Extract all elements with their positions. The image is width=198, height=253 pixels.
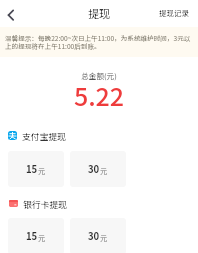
staticText: 元 <box>100 233 108 243</box>
staticText: 提现记录 <box>159 7 189 18</box>
staticText: 银行卡提现 <box>23 198 67 209</box>
staticText: 总金额(元) <box>0 70 198 81</box>
staticText: 元 <box>100 166 108 176</box>
staticText: 元 <box>38 166 46 176</box>
staticText: 30 <box>88 162 100 176</box>
staticText: 温馨提示：每晚22:00~次日上午11:00，为系统维护时间，3元以上的提现将在… <box>5 33 193 51</box>
staticText: 支付宝提现 <box>22 130 66 141</box>
staticText: 15 <box>26 162 38 176</box>
staticText: 30 <box>88 229 100 243</box>
staticText: 提现 <box>88 5 110 21</box>
staticText: 5.22 <box>0 77 198 113</box>
staticText: 15 <box>26 229 38 243</box>
button[interactable]: 提现记录 <box>150 2 198 23</box>
staticText: 元 <box>38 233 46 243</box>
button[interactable]: 15 <box>8 218 64 253</box>
button[interactable]: 返回 <box>0 0 25 25</box>
button[interactable]: 30 <box>70 218 126 253</box>
button[interactable]: 30 <box>70 151 126 187</box>
button[interactable]: 15 <box>8 151 64 187</box>
